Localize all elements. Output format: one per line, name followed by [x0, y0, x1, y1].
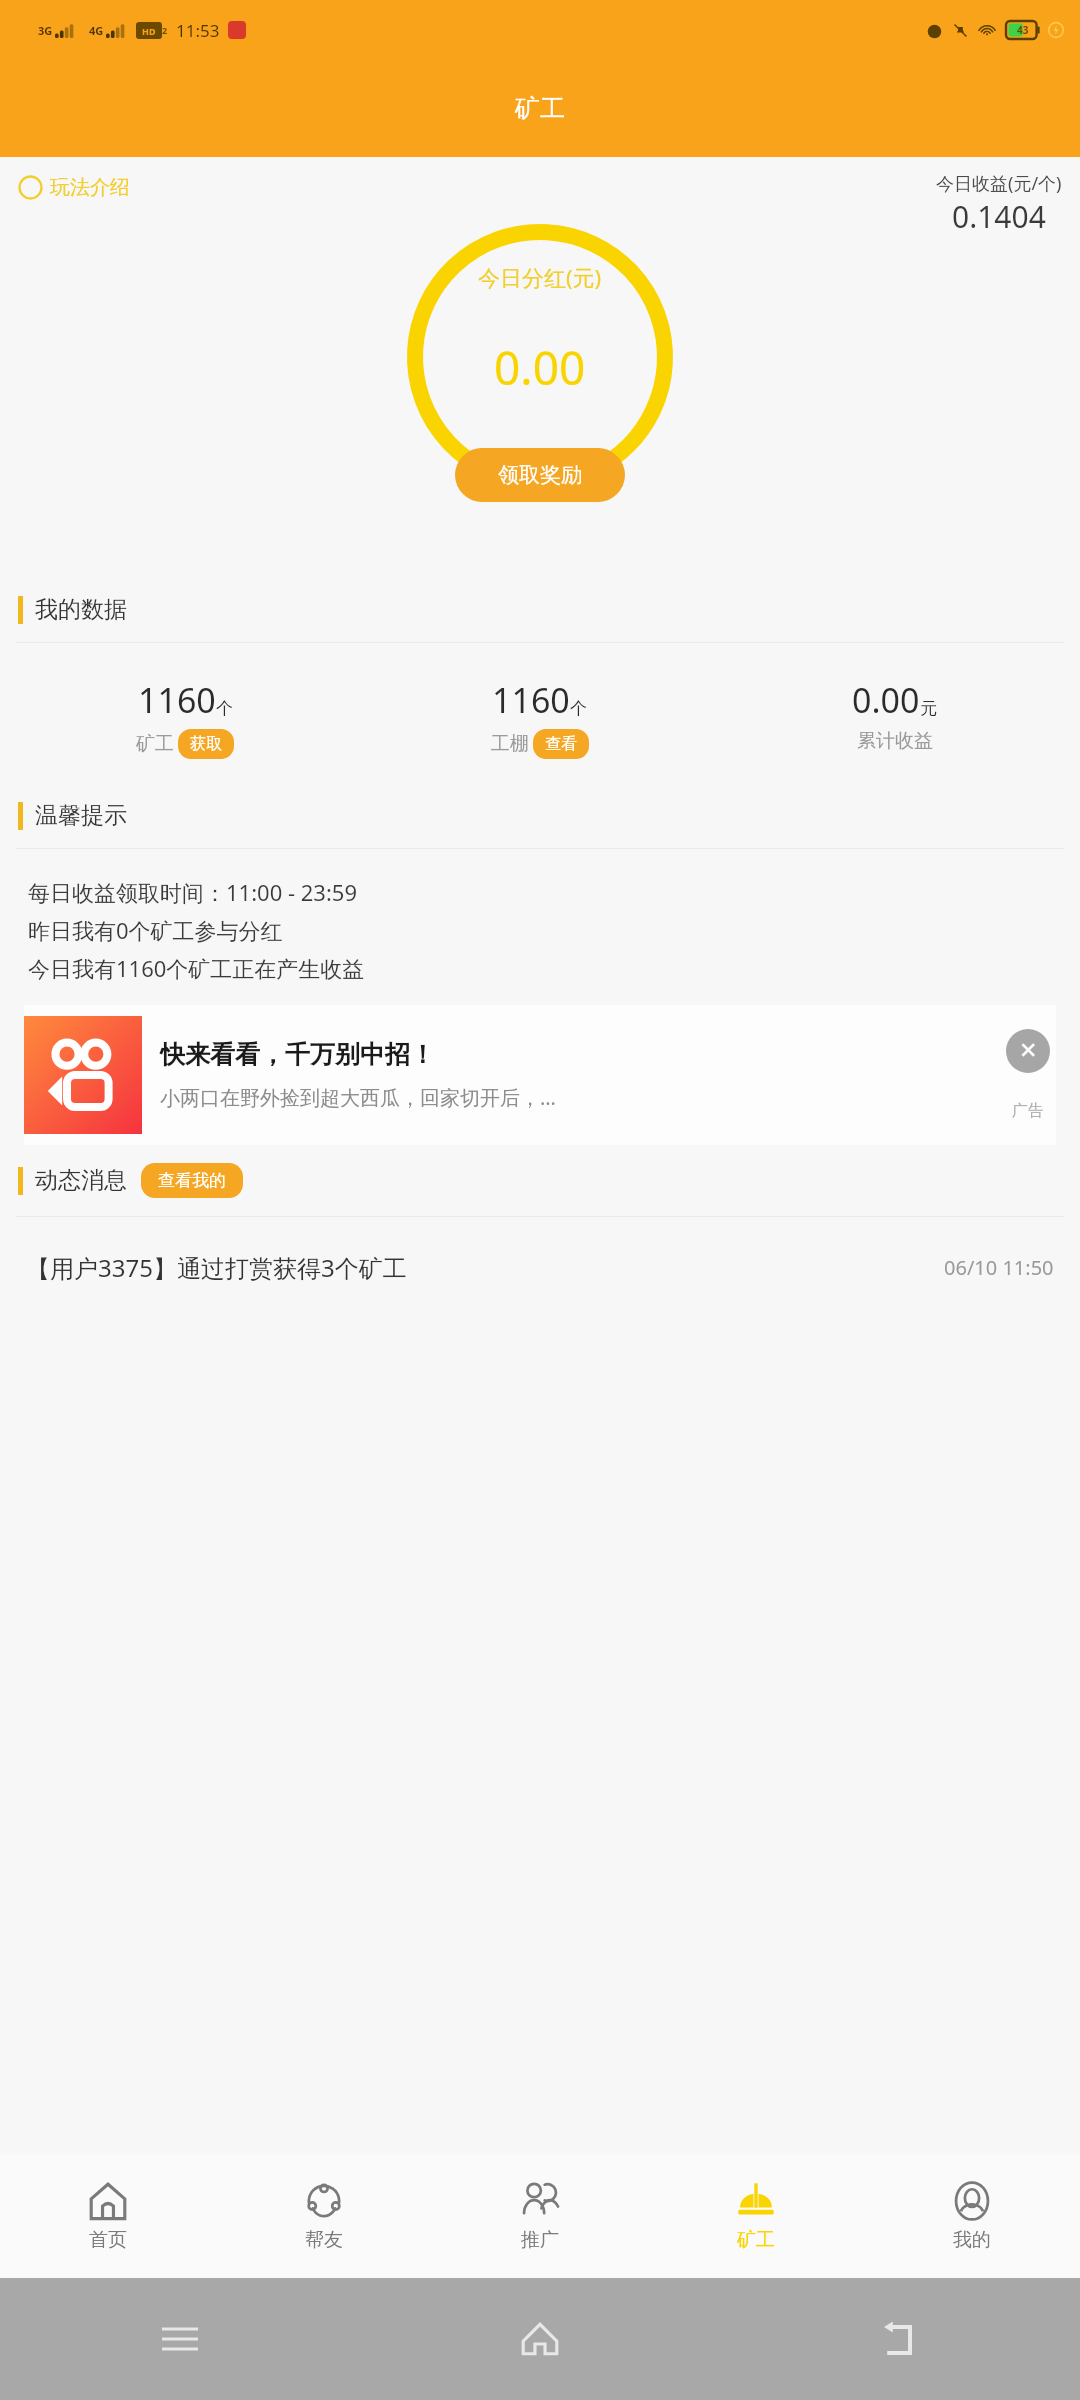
button[interactable]: 帮友 [216, 2154, 432, 2278]
button[interactable]: 1160 [8, 677, 362, 759]
staticText: 个 [216, 698, 233, 719]
staticText: 个 [570, 698, 587, 719]
button[interactable]: 查看我的 [141, 1163, 243, 1198]
staticText: 昨日我有0个矿工参与分红 [28, 915, 283, 945]
staticText: 快来看看，千万别中招！ [160, 1039, 435, 1070]
button[interactable]: 快来看看，千万别中招！ [24, 1005, 1056, 1145]
staticText: ✕ [1019, 1038, 1038, 1064]
staticText: 0.00 [852, 677, 920, 723]
staticText: 2 [162, 24, 168, 36]
staticText: 43 [1017, 23, 1029, 37]
staticText: 领取奖励 [498, 462, 582, 488]
staticText: HD [142, 25, 156, 37]
button[interactable]: 查看 [533, 729, 589, 759]
staticText: 查看 [545, 734, 577, 754]
button[interactable]: 主页 [360, 2278, 720, 2400]
button[interactable]: 首页 [0, 2154, 216, 2278]
staticText: 4G [89, 23, 104, 38]
staticText: 今日我有1160个矿工正在产生收益 [28, 953, 365, 983]
staticText: 首页 [89, 2228, 127, 2252]
staticText: 我的数据 [35, 595, 127, 624]
button[interactable]: 1160 [362, 677, 717, 759]
button[interactable]: 推广 [432, 2154, 648, 2278]
button[interactable]: 玩法介绍 [14, 171, 134, 204]
staticText: 今日分红(元) [478, 262, 602, 292]
button[interactable]: 关闭广告 [1006, 1029, 1050, 1073]
staticText: 矿工 [737, 2228, 775, 2252]
staticText: 今日收益(元/个) [936, 171, 1062, 196]
button[interactable]: 返回 [720, 2278, 1080, 2400]
button[interactable]: 领取奖励 [455, 448, 625, 502]
staticText: 温馨提示 [35, 801, 127, 830]
staticText: 查看我的 [158, 1170, 226, 1191]
staticText: 3G [38, 23, 53, 38]
staticText: 动态消息 [35, 1166, 127, 1195]
staticText: 1160 [492, 677, 570, 723]
staticText: 我的 [953, 2228, 991, 2252]
button[interactable]: 最近任务 [0, 2278, 360, 2400]
button[interactable]: 我的 [864, 2154, 1080, 2278]
staticText: 广告 [1012, 1101, 1044, 1121]
staticText: 获取 [190, 734, 222, 754]
staticText: 11:53 [176, 19, 220, 42]
staticText: 0.1404 [952, 196, 1046, 237]
staticText: 06/10 11:50 [944, 1254, 1054, 1281]
staticText: 元 [920, 698, 937, 719]
staticText: 累计收益 [857, 729, 933, 753]
staticText: 【用户3375】通过打赏获得3个矿工 [26, 1251, 407, 1284]
button[interactable]: 矿工 [648, 2154, 864, 2278]
button[interactable]: 0.00 [717, 677, 1072, 753]
staticText: 0.00 [494, 336, 586, 399]
button[interactable]: 获取 [178, 729, 234, 759]
staticText: 矿工 [136, 732, 174, 756]
staticText: 1160 [138, 677, 216, 723]
staticText: 每日收益领取时间：11:00 - 23:59 [28, 877, 357, 907]
staticText: 工棚 [491, 732, 529, 756]
staticText: 帮友 [305, 2228, 343, 2252]
staticText: 矿工 [515, 93, 565, 124]
staticText: 玩法介绍 [50, 175, 130, 200]
staticText: 小两口在野外捡到超大西瓜，回家切开后，… [160, 1084, 556, 1111]
button[interactable]: 【用户3375】通过打赏获得3个矿工 [26, 1251, 1054, 1284]
staticText: 推广 [521, 2228, 559, 2252]
